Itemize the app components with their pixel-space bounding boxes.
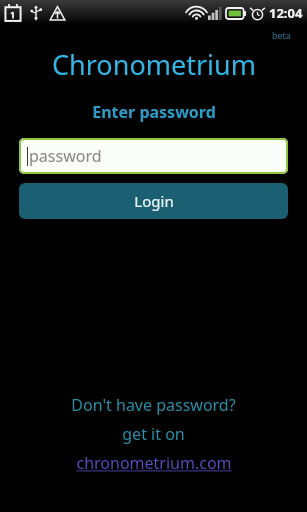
staticText: Don't have password? (71, 394, 236, 416)
button[interactable]: chronometrium.com (76, 452, 232, 474)
staticText: password (29, 145, 102, 167)
staticText: beta (272, 29, 291, 41)
staticText: Chronometrium (52, 46, 256, 83)
other: Calendar notification (4, 4, 22, 22)
staticText: chronometrium.com (76, 452, 232, 474)
button[interactable]: Login (19, 183, 288, 219)
button[interactable]: password (19, 138, 288, 174)
staticText: 12:04 (269, 4, 303, 22)
other: Cellular signal (208, 6, 222, 20)
staticText: get it on (122, 423, 185, 445)
other: Battery full (226, 8, 246, 19)
other: USB connected (28, 5, 44, 21)
staticText: Enter password (92, 101, 216, 123)
other: Uploading (49, 5, 66, 22)
other: Wi-Fi signal (189, 6, 204, 21)
other: Alarm set (250, 6, 265, 21)
staticText: Login (134, 191, 174, 211)
